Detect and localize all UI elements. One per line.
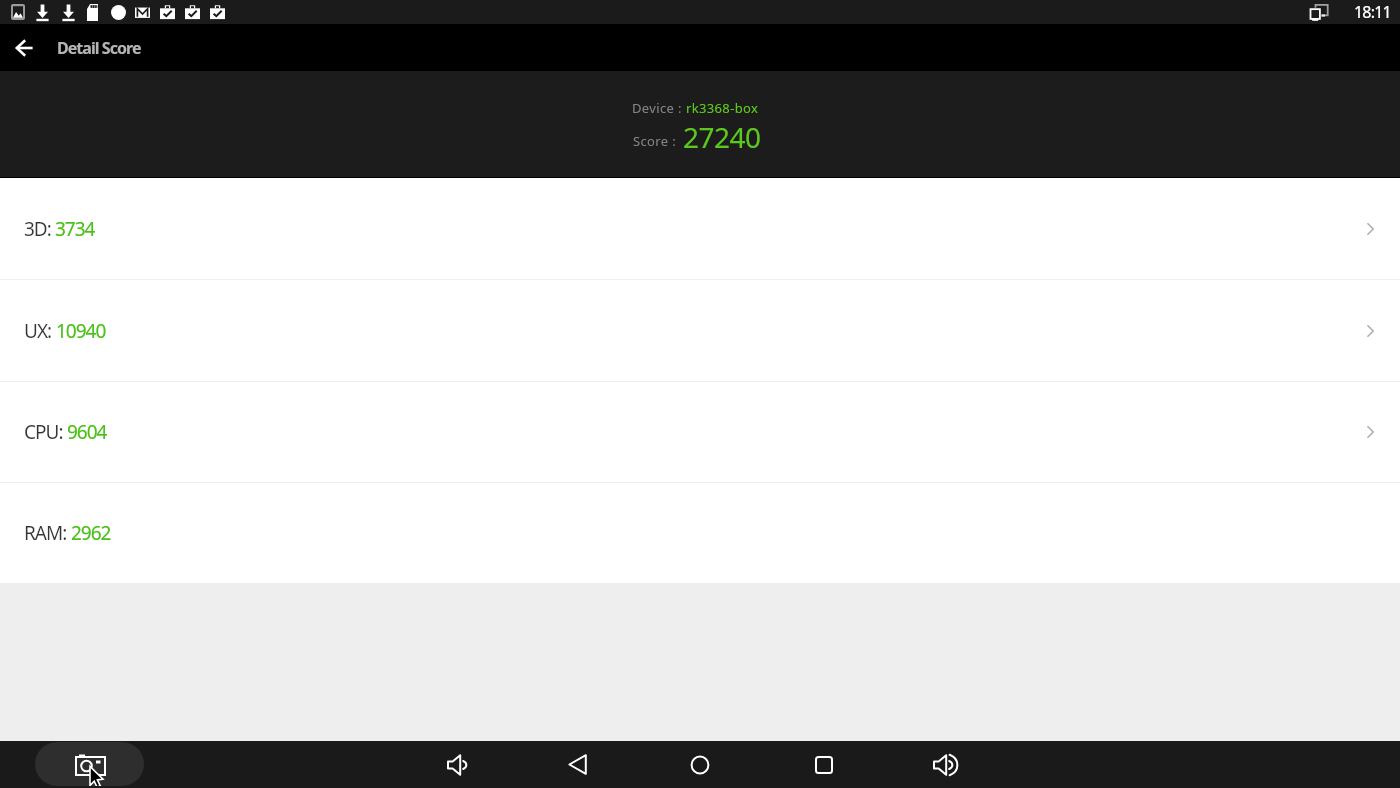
button[interactable]: RAM: (0, 483, 1400, 583)
button[interactable]: CPU: (0, 382, 1400, 482)
button[interactable]: Back (0, 24, 48, 71)
staticText: Device : (632, 99, 686, 117)
button[interactable]: 3D: (0, 178, 1400, 279)
button[interactable]: Volume down (434, 741, 480, 788)
button[interactable]: Recents (801, 741, 847, 788)
staticText: 10940 (56, 318, 106, 344)
staticText: 3D: (24, 216, 51, 242)
staticText: Detail Score (57, 37, 141, 59)
staticText: CPU: (24, 419, 63, 445)
staticText: Score : (633, 132, 680, 150)
button[interactable]: Back (554, 741, 600, 788)
staticText: 2962 (71, 520, 111, 546)
staticText: 18:11 (1354, 1, 1391, 23)
button[interactable]: Screenshot (35, 742, 144, 786)
button[interactable]: Home (677, 741, 723, 788)
staticText: rk3368-box (686, 99, 759, 117)
staticText: 3734 (55, 216, 95, 242)
staticText: RAM: (24, 520, 67, 546)
staticText: UX: (24, 318, 52, 344)
staticText: 27240 (683, 118, 761, 156)
button[interactable]: UX: (0, 280, 1400, 381)
staticText: 9604 (67, 419, 107, 445)
button[interactable]: Volume up (922, 741, 968, 788)
